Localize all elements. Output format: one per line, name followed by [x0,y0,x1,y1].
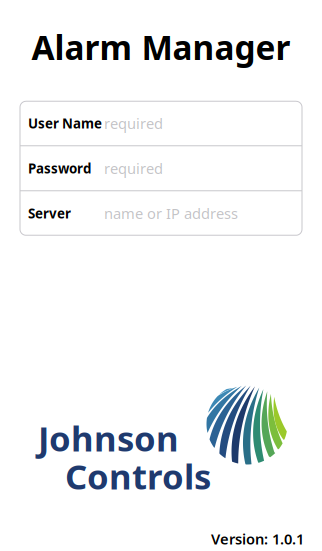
staticText: Version: 1.0.1 [211,529,304,548]
staticText: Password [28,159,91,177]
staticText: User Name [28,114,102,132]
button[interactable]: Server [20,191,302,235]
staticText: name or IP address [104,203,238,223]
staticText: required [104,158,163,178]
staticText: Johnson [38,415,179,461]
button[interactable]: User Name [20,101,302,145]
button[interactable]: Password [20,146,302,190]
staticText: Server [28,204,71,222]
staticText: Controls [65,453,211,499]
staticText: Alarm Manager [31,25,290,69]
staticText: required [104,113,163,133]
